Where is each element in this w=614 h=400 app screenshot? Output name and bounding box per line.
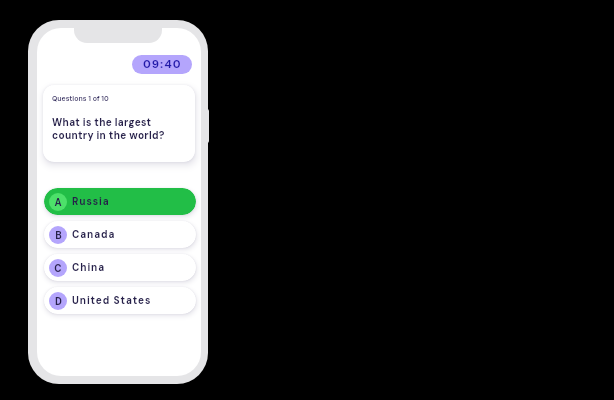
staticText: 09:40 xyxy=(143,57,182,72)
staticText: Questions 1 of 10 xyxy=(52,94,109,103)
button[interactable]: B xyxy=(44,221,196,248)
button[interactable]: D xyxy=(44,287,196,314)
button[interactable]: Questions 1 of 10 xyxy=(43,85,195,162)
staticText: B xyxy=(55,229,62,242)
button[interactable]: A xyxy=(44,188,196,215)
staticText: C xyxy=(54,262,62,275)
button[interactable]: 09:40 xyxy=(132,55,192,74)
staticText: D xyxy=(55,295,62,308)
staticText: What is the largest country in the world… xyxy=(52,116,165,142)
staticText: Russia xyxy=(72,195,110,208)
staticText: A xyxy=(54,196,62,209)
staticText: Canada xyxy=(72,228,116,241)
staticText: China xyxy=(72,261,106,274)
button[interactable]: C xyxy=(44,254,196,281)
staticText: United States xyxy=(72,294,152,307)
